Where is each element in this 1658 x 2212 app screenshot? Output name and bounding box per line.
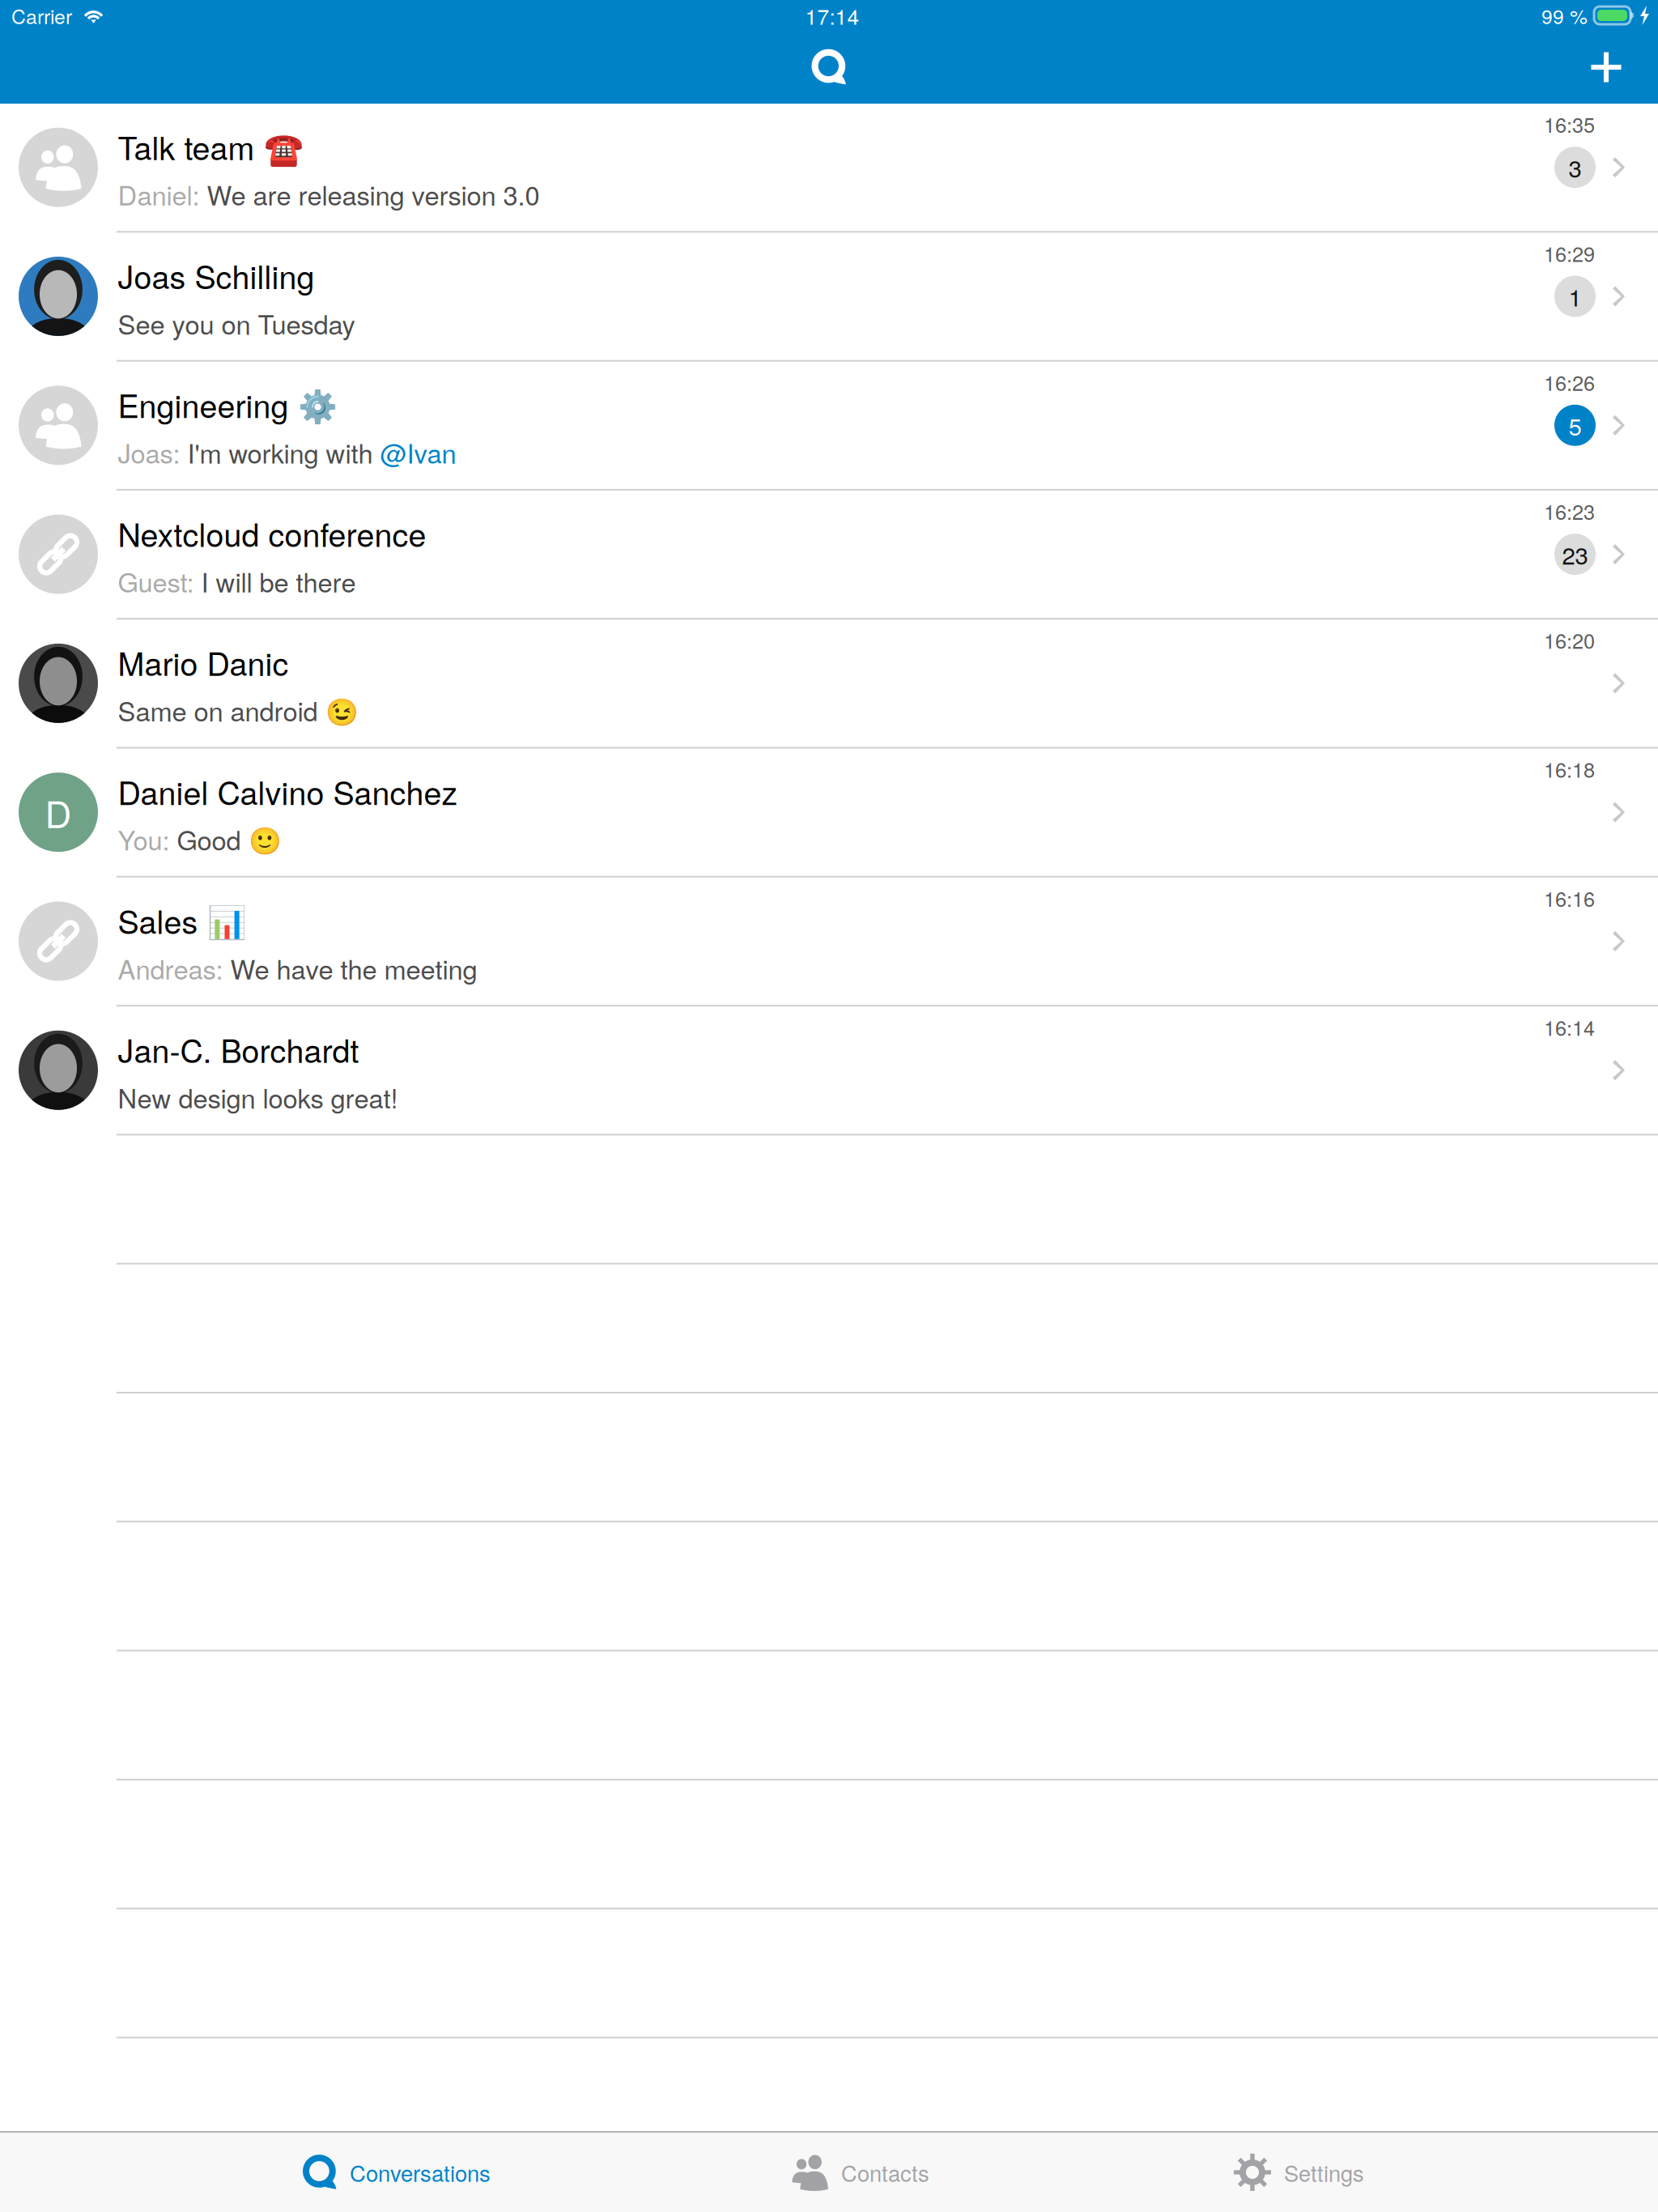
staticText: 16:29 <box>1544 238 1595 268</box>
staticText: Joas: <box>118 433 187 471</box>
staticText: 5 <box>1569 408 1581 442</box>
button[interactable]: New conversation <box>1570 31 1643 104</box>
staticText: D <box>45 786 72 838</box>
staticText: You: <box>118 820 177 858</box>
staticText: 17:14 <box>805 0 859 31</box>
staticText: 16:20 <box>1544 625 1595 655</box>
staticText: Carrier <box>11 1 72 30</box>
staticText: Joas Schilling <box>118 252 315 298</box>
staticText: Nextcloud conference <box>118 510 426 556</box>
button[interactable]: Sales 📊 <box>0 878 1658 1006</box>
button[interactable]: Jan-C. Borchardt <box>0 1006 1658 1135</box>
button[interactable]: Conversations <box>303 2133 491 2212</box>
staticText: See you on Tuesday <box>118 304 355 342</box>
staticText: I'm working with <box>187 433 380 471</box>
staticText: 16:23 <box>1544 496 1595 526</box>
staticText: Andreas: <box>118 949 230 987</box>
staticText: 16:35 <box>1544 109 1595 139</box>
staticText: 16:16 <box>1544 883 1595 913</box>
staticText: Mario Danic <box>118 639 289 685</box>
button[interactable]: Contacts <box>792 2133 929 2212</box>
staticText: 1 <box>1569 279 1581 313</box>
staticText: Talk team ☎️ <box>118 123 303 169</box>
button[interactable]: Settings <box>1234 2133 1364 2212</box>
staticText: 16:14 <box>1544 1012 1595 1042</box>
staticText: Contacts <box>841 2156 929 2188</box>
staticText: Guest: <box>118 562 201 600</box>
staticText: 99 % <box>1541 1 1588 30</box>
staticText: We are releasing version 3.0 <box>207 175 540 213</box>
button[interactable]: Nextcloud conference <box>0 491 1658 620</box>
button[interactable]: Mario Danic <box>0 620 1658 749</box>
staticText: Jan-C. Borchardt <box>118 1026 359 1072</box>
staticText: 16:26 <box>1544 367 1595 397</box>
staticText: We have the meeting <box>230 949 477 987</box>
staticText: Sales 📊 <box>118 897 247 943</box>
staticText: 16:18 <box>1544 754 1595 784</box>
button[interactable]: Joas Schilling <box>0 233 1658 362</box>
staticText: Settings <box>1284 2156 1364 2188</box>
staticText: Good 🙂 <box>177 820 281 858</box>
staticText: Conversations <box>350 2156 491 2188</box>
button[interactable]: Engineering ⚙️ <box>0 362 1658 491</box>
button[interactable]: Talk team ☎️ <box>0 104 1658 233</box>
staticText: 3 <box>1569 150 1581 184</box>
staticText: Daniel Calvino Sanchez <box>118 768 458 814</box>
staticText: @Ivan <box>380 433 456 471</box>
staticText: Same on android 😉 <box>118 691 358 729</box>
staticText: Daniel: <box>118 175 207 213</box>
button[interactable]: D <box>0 749 1658 878</box>
staticText: Engineering ⚙️ <box>118 381 337 427</box>
staticText: I will be there <box>201 562 356 600</box>
staticText: 23 <box>1562 537 1588 571</box>
button[interactable]: Nextcloud Talk <box>793 31 865 104</box>
staticText: New design looks great! <box>118 1078 398 1116</box>
